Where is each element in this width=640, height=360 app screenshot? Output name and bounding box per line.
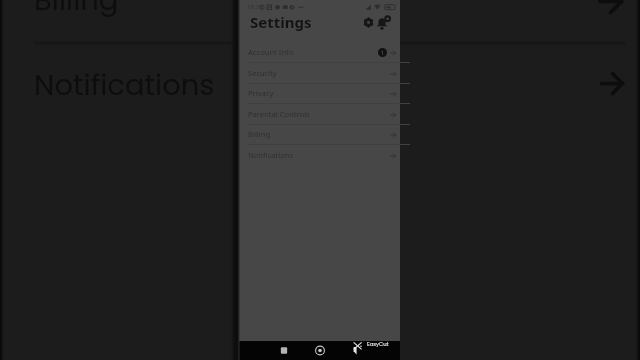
staticText: Account Info [248,47,294,57]
button[interactable]: Parental Controls [238,104,400,125]
button[interactable]: Privacy [238,83,400,104]
button[interactable]: Recents [276,341,292,357]
button[interactable]: Notifications [238,145,400,166]
button[interactable]: Settings [360,14,376,30]
staticText: Notifications [34,65,215,106]
button[interactable]: Billing [238,124,400,145]
button[interactable]: Home [312,341,328,357]
staticText: Billing [248,129,271,139]
button[interactable]: Notifications [375,14,392,31]
staticText: Parental Controls [248,109,310,119]
button[interactable]: Account Info [238,42,400,63]
staticText: Settings [250,12,312,32]
button[interactable]: Security [238,63,400,84]
staticText: 1 [381,49,385,56]
staticText: Billing [34,0,119,21]
staticText: Privacy [248,88,274,98]
staticText: 18:31 [247,3,263,10]
staticText: Notifications [248,150,294,160]
staticText: Security [248,68,277,78]
staticText: EasyCut [367,340,389,347]
